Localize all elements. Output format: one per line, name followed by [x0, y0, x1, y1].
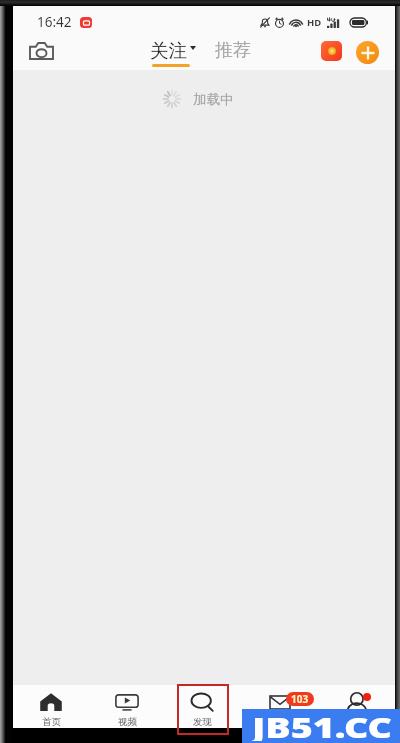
staticText: 消息 [271, 716, 290, 728]
button[interactable]: 发现 [176, 685, 228, 728]
button[interactable]: 关注 [146, 38, 202, 72]
button[interactable]: 我的 [331, 685, 383, 728]
staticText: 发现 [193, 716, 212, 728]
staticText: HD [307, 16, 322, 29]
staticText: 16:42 [37, 13, 72, 31]
button[interactable]: 首页 [25, 685, 77, 728]
button[interactable]: Camera [21, 31, 61, 71]
button[interactable]: 视频 [101, 685, 153, 728]
staticText: 加载中 [193, 91, 234, 108]
staticText: 我的 [348, 716, 367, 728]
staticText: 首页 [42, 716, 61, 728]
staticText: 视频 [118, 716, 137, 728]
staticText: JB51.CC [252, 707, 400, 741]
button[interactable]: Add [346, 31, 388, 73]
staticText: 推荐 [215, 39, 251, 62]
staticText: 103 [291, 692, 309, 706]
button[interactable]: Gift [311, 31, 351, 71]
staticText: 关注 [150, 39, 187, 62]
button[interactable]: 消息 [254, 685, 306, 728]
button[interactable]: 推荐 [209, 38, 259, 72]
